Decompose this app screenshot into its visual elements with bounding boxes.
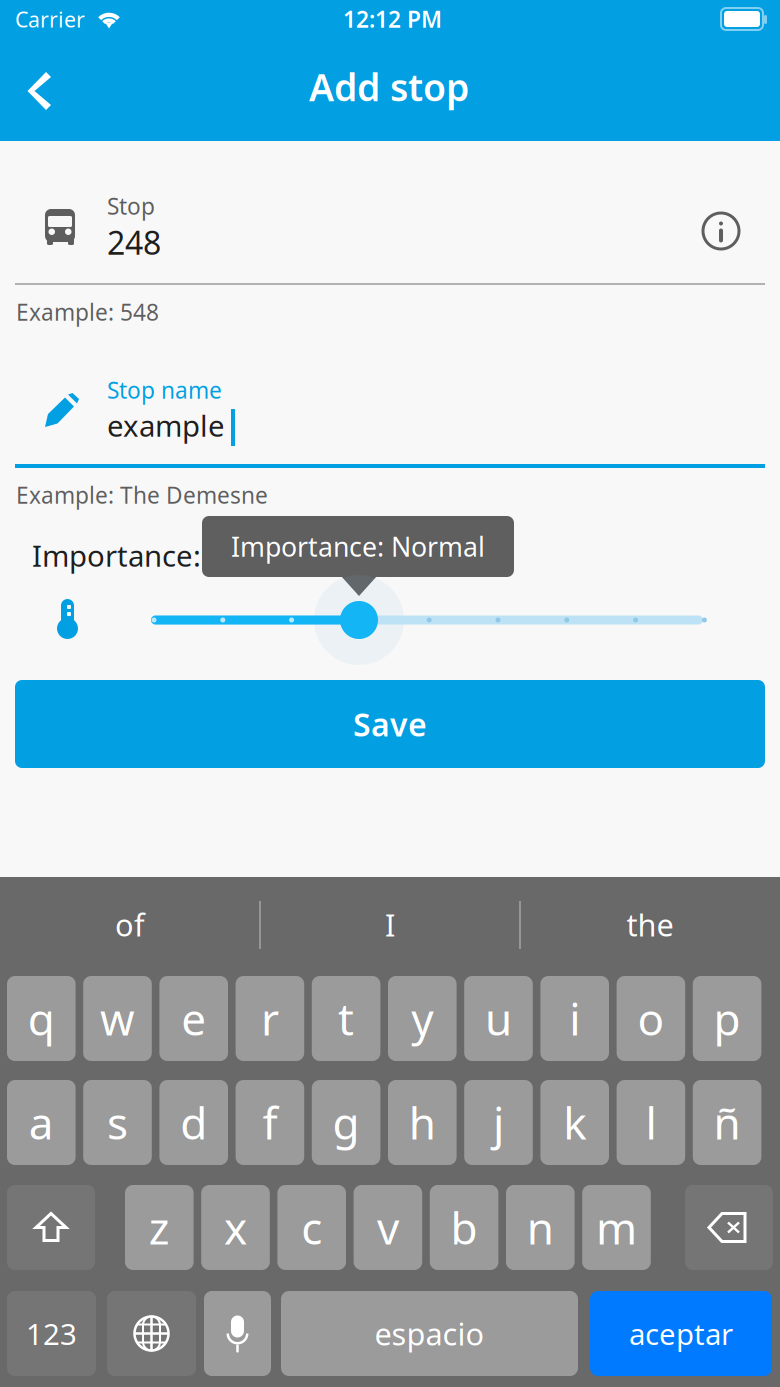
button[interactable]: z xyxy=(125,1185,194,1270)
staticText: Example: The Demesne xyxy=(16,480,268,510)
staticText: the xyxy=(626,904,673,945)
staticText: aceptar xyxy=(629,1314,733,1353)
staticText: k xyxy=(563,1093,586,1152)
button[interactable]: Next keyboard xyxy=(107,1291,196,1376)
button[interactable]: p xyxy=(693,976,761,1061)
staticText: p xyxy=(714,989,741,1048)
staticText: Add stop xyxy=(309,62,469,112)
staticText: d xyxy=(180,1093,207,1152)
staticText: x xyxy=(224,1198,247,1257)
staticText: g xyxy=(333,1093,360,1152)
staticText: b xyxy=(451,1198,478,1257)
button[interactable]: w xyxy=(83,976,152,1061)
button[interactable]: Dictation xyxy=(204,1291,271,1376)
staticText: Example: 548 xyxy=(16,297,159,327)
staticText: h xyxy=(409,1093,436,1152)
button[interactable]: a xyxy=(7,1080,76,1165)
button[interactable]: i xyxy=(540,976,609,1061)
staticText: e xyxy=(181,989,206,1048)
staticText: I xyxy=(385,904,395,945)
staticText: n xyxy=(527,1198,554,1257)
button[interactable]: u xyxy=(464,976,533,1061)
staticText: Importance: xyxy=(32,536,201,575)
button[interactable]: v xyxy=(354,1185,422,1270)
staticText: 123 xyxy=(26,1314,77,1353)
button[interactable]: espacio xyxy=(281,1291,578,1376)
staticText: o xyxy=(637,989,664,1048)
staticText: ñ xyxy=(714,1093,741,1152)
staticText: Stop name xyxy=(107,375,222,405)
staticText: j xyxy=(493,1093,504,1152)
button[interactable]: k xyxy=(540,1080,609,1165)
button[interactable]: l xyxy=(617,1080,685,1165)
staticText: w xyxy=(100,989,135,1048)
button[interactable]: Info xyxy=(690,200,752,262)
button[interactable]: f xyxy=(236,1080,304,1165)
button[interactable]: n xyxy=(506,1185,575,1270)
button[interactable]: of xyxy=(0,877,260,972)
button[interactable]: b xyxy=(430,1185,498,1270)
button[interactable]: I xyxy=(260,877,520,972)
button[interactable]: h xyxy=(388,1080,457,1165)
button[interactable]: r xyxy=(236,976,304,1061)
staticText: u xyxy=(485,989,512,1048)
staticText: espacio xyxy=(374,1313,484,1354)
staticText: a xyxy=(29,1093,54,1152)
button[interactable]: m xyxy=(582,1185,651,1270)
staticText: q xyxy=(28,989,55,1048)
button[interactable]: d xyxy=(159,1080,228,1165)
staticText: example xyxy=(107,406,225,445)
button[interactable]: g xyxy=(312,1080,380,1165)
button[interactable]: y xyxy=(388,976,457,1061)
staticText: v xyxy=(377,1198,399,1257)
button[interactable]: Shift xyxy=(7,1185,95,1270)
staticText: 12:12 PM xyxy=(343,4,442,34)
staticText: m xyxy=(596,1198,637,1257)
button[interactable]: 123 xyxy=(7,1291,96,1376)
staticText: 248 xyxy=(107,221,161,263)
staticText: y xyxy=(411,989,433,1048)
button[interactable]: Save xyxy=(15,680,765,768)
staticText: of xyxy=(115,904,145,945)
staticText: Save xyxy=(353,703,427,745)
staticText: f xyxy=(262,1093,277,1152)
button[interactable]: o xyxy=(617,976,685,1061)
button[interactable]: ñ xyxy=(693,1080,761,1165)
staticText: i xyxy=(569,989,580,1048)
staticText: Carrier xyxy=(15,5,85,33)
staticText: s xyxy=(107,1093,128,1152)
button[interactable]: x xyxy=(201,1185,270,1270)
staticText: r xyxy=(261,989,279,1048)
staticText: t xyxy=(338,989,354,1048)
button[interactable]: the xyxy=(520,877,780,972)
button[interactable]: s xyxy=(83,1080,152,1165)
staticText: Stop xyxy=(107,191,155,221)
button[interactable]: j xyxy=(464,1080,533,1165)
staticText: z xyxy=(149,1198,170,1257)
button[interactable]: Delete xyxy=(685,1185,773,1270)
button[interactable]: e xyxy=(159,976,228,1061)
button[interactable]: aceptar xyxy=(590,1291,772,1376)
staticText: c xyxy=(301,1198,322,1257)
staticText: l xyxy=(645,1093,656,1152)
button[interactable]: t xyxy=(312,976,380,1061)
button[interactable]: c xyxy=(277,1185,346,1270)
staticText: Importance: Normal xyxy=(231,529,485,564)
button[interactable]: q xyxy=(7,976,76,1061)
button[interactable]: Back xyxy=(0,52,82,130)
